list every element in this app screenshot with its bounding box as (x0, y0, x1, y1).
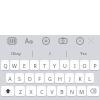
button[interactable]: N (67, 86, 76, 96)
button[interactable]: F (35, 73, 44, 83)
staticText: Y (53, 62, 56, 69)
button[interactable]: Text format (23, 35, 34, 46)
button[interactable]: Apps (6, 35, 17, 46)
button[interactable]: U (60, 60, 69, 70)
button[interactable]: I (70, 60, 79, 70)
button[interactable]: Yes (67, 48, 100, 59)
staticText: S (18, 75, 21, 82)
staticText: J (69, 75, 71, 82)
staticText: L (88, 75, 91, 82)
button[interactable]: V (47, 86, 56, 96)
staticText: N (70, 88, 74, 95)
button[interactable]: Effects (74, 35, 85, 46)
staticText: I (49, 51, 51, 57)
button[interactable]: S (15, 73, 24, 83)
staticText: Okay (11, 51, 21, 57)
staticText: T (43, 62, 46, 69)
staticText: P (93, 62, 97, 69)
staticText: K (78, 75, 82, 82)
staticText: I (74, 62, 76, 69)
staticText: O (82, 62, 87, 69)
button[interactable]: E (20, 60, 29, 70)
button[interactable]: J (65, 73, 74, 83)
staticText: Yes (80, 51, 87, 57)
button[interactable]: L (85, 73, 94, 83)
staticText: U (63, 62, 67, 69)
staticText: V (50, 88, 54, 95)
button[interactable]: G (45, 73, 54, 83)
staticText: B (60, 88, 64, 95)
button[interactable]: Backspace (87, 86, 99, 96)
button[interactable]: M (77, 86, 86, 96)
button[interactable]: I (33, 48, 66, 59)
staticText: C (40, 88, 44, 95)
button[interactable]: R (30, 60, 39, 70)
staticText: E (23, 62, 26, 69)
button[interactable]: Okay (0, 48, 32, 59)
staticText: W (12, 62, 17, 69)
button[interactable]: C (37, 86, 46, 96)
button[interactable]: X (26, 86, 36, 96)
button[interactable]: Stickers (40, 35, 51, 46)
button[interactable]: Q (1, 60, 9, 70)
staticText: X (29, 88, 33, 95)
staticText: A (8, 75, 12, 82)
button[interactable]: O (80, 60, 89, 70)
button[interactable]: Camera (57, 35, 68, 46)
button[interactable]: K (75, 73, 84, 83)
button[interactable]: Y (50, 60, 59, 70)
staticText: F (38, 75, 41, 82)
button[interactable]: Shift (1, 86, 14, 96)
staticText: H (58, 75, 62, 82)
staticText: Z (19, 88, 22, 95)
staticText: Q (3, 62, 8, 69)
staticText: G (48, 75, 52, 82)
button[interactable]: A (6, 73, 14, 83)
staticText: D (28, 75, 32, 82)
button[interactable]: B (57, 86, 66, 96)
staticText: M (79, 88, 84, 95)
button[interactable]: H (55, 73, 64, 83)
staticText: R (33, 62, 37, 69)
button[interactable]: Close (86, 36, 96, 46)
button[interactable]: P (90, 60, 99, 70)
button[interactable]: D (25, 73, 34, 83)
button[interactable]: W (10, 60, 19, 70)
button[interactable]: Z (15, 86, 25, 96)
button[interactable]: T (40, 60, 49, 70)
